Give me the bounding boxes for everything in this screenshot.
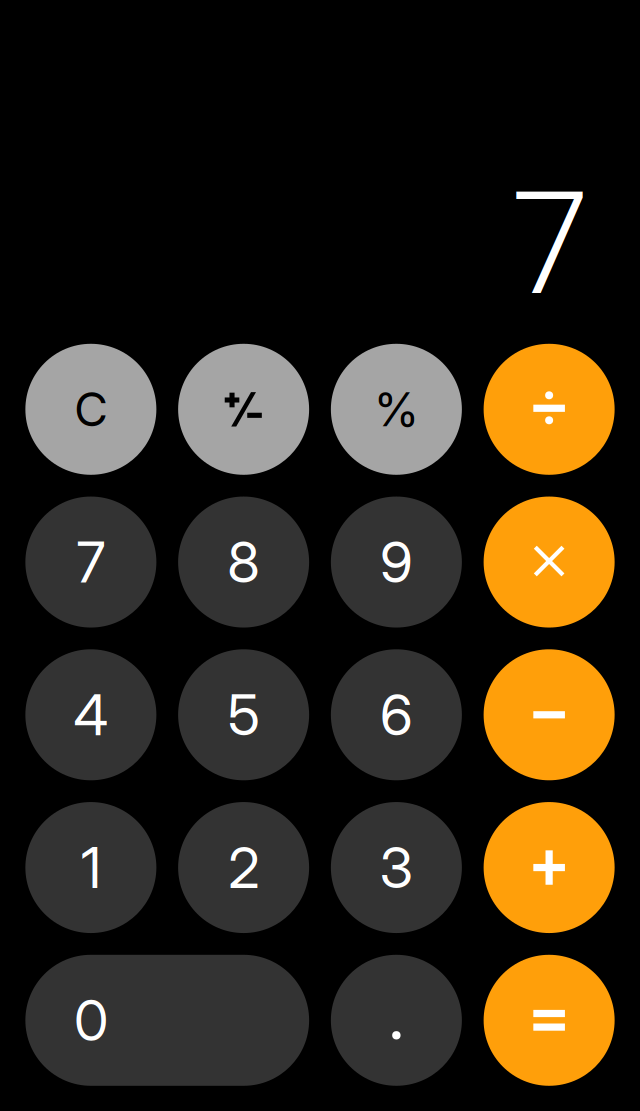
button[interactable]: 6 — [331, 649, 462, 780]
button[interactable]: 8 — [178, 496, 309, 627]
staticText: 5 — [228, 681, 260, 749]
button[interactable]: 0 — [25, 955, 309, 1086]
staticText: % — [373, 381, 419, 438]
staticText: 2 — [228, 834, 259, 901]
staticText: C — [74, 381, 108, 438]
button[interactable]: 4 — [25, 649, 156, 780]
button[interactable]: Add — [484, 802, 615, 933]
button[interactable]: 7 — [25, 496, 156, 627]
staticText: 3 — [379, 834, 413, 901]
staticText: 1 — [81, 834, 101, 901]
staticText: 9 — [380, 528, 413, 596]
button[interactable]: 2 — [178, 802, 309, 933]
staticText: 7 — [509, 140, 590, 335]
staticText: 8 — [227, 528, 260, 596]
button[interactable]: Subtract — [484, 649, 615, 780]
button[interactable]: Toggle sign — [178, 344, 309, 475]
button[interactable]: C — [25, 344, 156, 475]
button[interactable]: 3 — [331, 802, 462, 933]
button[interactable]: Decimal point — [331, 955, 462, 1086]
button[interactable]: 9 — [331, 496, 462, 627]
staticText: 0 — [74, 986, 108, 1054]
button[interactable]: % — [331, 344, 462, 475]
button[interactable]: Multiply — [484, 496, 615, 627]
staticText: 6 — [380, 681, 413, 749]
staticText: 4 — [73, 681, 108, 749]
staticText: 7 — [76, 528, 105, 596]
button[interactable]: 1 — [25, 802, 156, 933]
button[interactable]: Equals — [484, 955, 615, 1086]
button[interactable]: Divide — [484, 344, 615, 475]
button[interactable]: 5 — [178, 649, 309, 780]
